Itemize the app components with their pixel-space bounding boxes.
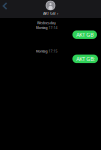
button[interactable]: AKT GB (72, 30, 97, 39)
staticText: Wednesday (37, 20, 56, 25)
button[interactable]: Back (2, 2, 8, 10)
staticText: Montag (35, 25, 47, 30)
staticText: Montag (35, 49, 47, 54)
staticText: AKT GB: (76, 55, 94, 62)
button[interactable]: AKT GB: (72, 55, 98, 63)
staticText: AKT GB › (43, 10, 58, 16)
staticText: 17:15 (48, 49, 57, 54)
staticText: 17:14 (48, 25, 57, 30)
button[interactable]: AKT GB › (43, 1, 58, 16)
staticText: AKT GB (76, 31, 93, 38)
